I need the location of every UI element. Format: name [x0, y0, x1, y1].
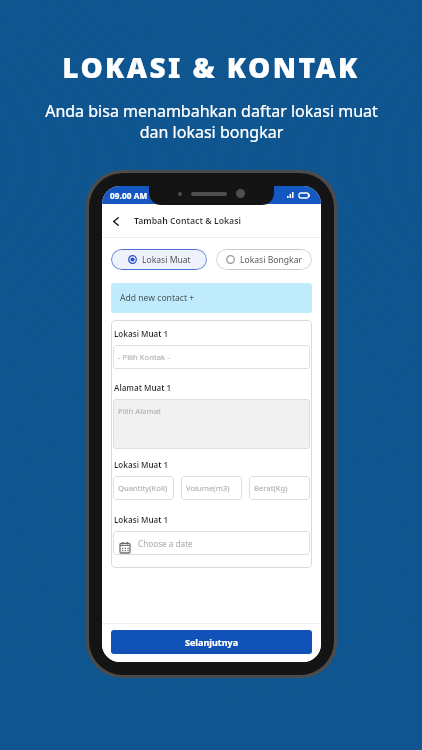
staticText: Lokasi Muat 1 — [114, 514, 169, 525]
staticText: Choose a date — [138, 538, 193, 549]
staticText: Volume(m3) — [186, 483, 230, 493]
button[interactable]: Choose a date — [113, 531, 310, 555]
staticText: 09.00 AM — [110, 190, 148, 201]
staticText: LOKASI & KONTAK — [62, 48, 360, 86]
staticText: Lokasi Muat — [142, 254, 191, 266]
staticText: Lokasi Bongkar — [240, 254, 303, 266]
staticText: Anda bisa menambahkan daftar lokasi muat… — [45, 100, 378, 143]
button[interactable]: - Pilih Kontak - — [113, 345, 310, 369]
staticText: Berat(Kg) — [254, 483, 288, 493]
button[interactable]: Add new contact + — [111, 283, 312, 313]
button[interactable]: Pilih Alamat — [113, 399, 310, 449]
staticText: - Pilih Kontak - — [118, 352, 170, 362]
staticText: Lokasi Muat 1 — [114, 459, 169, 470]
button[interactable]: Berat(Kg) — [249, 476, 310, 500]
staticText: Tambah Contact & Lokasi — [134, 215, 241, 227]
button[interactable]: Selanjutnya — [111, 630, 312, 654]
staticText: Selanjutnya — [185, 636, 239, 648]
button[interactable]: Back — [107, 212, 125, 230]
button[interactable]: Quantity(Koli) — [113, 476, 174, 500]
staticText: Alamat Muat 1 — [114, 382, 172, 393]
button[interactable]: Lokasi Muat — [111, 249, 207, 270]
staticText: Lokasi Muat 1 — [114, 328, 169, 339]
button[interactable]: Volume(m3) — [181, 476, 242, 500]
staticText: Add new contact + — [120, 292, 195, 304]
staticText: Pilih Alamat — [118, 406, 161, 416]
staticText: Quantity(Koli) — [118, 483, 168, 493]
button[interactable]: Lokasi Bongkar — [216, 249, 312, 270]
